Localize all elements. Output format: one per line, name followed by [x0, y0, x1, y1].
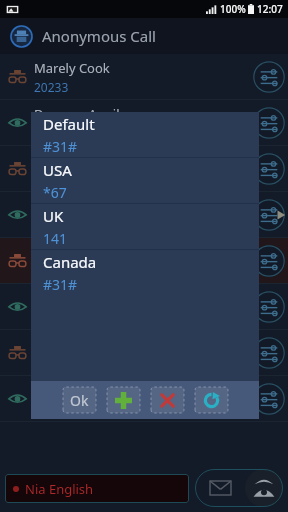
button[interactable]: Ok: [63, 387, 96, 413]
button[interactable]: Marely Cook: [0, 54, 288, 99]
button[interactable]: Liam Foster: [0, 376, 288, 421]
button[interactable]: Delete: [151, 387, 184, 413]
button[interactable]: Anonymous Call: [0, 18, 288, 54]
button[interactable]: Message: [195, 469, 245, 507]
staticText: Noah Blake: [34, 289, 104, 307]
staticText: 12:07: [257, 2, 283, 16]
other: Options: [253, 199, 285, 231]
other: Options: [253, 383, 285, 415]
staticText: Default: [43, 114, 95, 134]
staticText: 62390: [34, 401, 69, 417]
button[interactable]: Call: [245, 469, 283, 507]
other: Options: [253, 107, 285, 139]
button[interactable]: UK: [31, 204, 259, 249]
staticText: #31#: [43, 137, 78, 156]
staticText: #31#: [43, 275, 78, 294]
staticText: Anonymous Call: [42, 26, 156, 46]
staticText: 47811: [34, 125, 69, 141]
button[interactable]: Noah Blake: [0, 284, 288, 329]
staticText: Nia English: [25, 480, 94, 498]
other: Options: [253, 291, 285, 323]
button[interactable]: Damson Aguilar: [0, 100, 288, 145]
staticText: Ivy Patel: [34, 243, 86, 261]
other: Anonymous Call: [10, 25, 33, 48]
button[interactable]: Nia English: [5, 474, 189, 503]
button[interactable]: Leah Monroe: [0, 192, 288, 237]
other: Options: [253, 337, 285, 369]
other: Options: [253, 61, 285, 93]
staticText: 141: [43, 229, 68, 248]
staticText: *67: [43, 183, 67, 202]
staticText: 33415: [34, 217, 69, 233]
button[interactable]: Ivy Patel: [0, 238, 288, 283]
staticText: 20233: [34, 79, 69, 95]
staticText: Marely Cook: [34, 59, 110, 77]
button[interactable]: Add: [107, 387, 140, 413]
button[interactable]: Carter Reid: [0, 146, 288, 191]
button[interactable]: USA: [31, 158, 259, 203]
staticText: 56098: [34, 263, 69, 279]
button[interactable]: Canada: [31, 250, 259, 295]
staticText: Liam Foster: [34, 381, 106, 399]
staticText: Ok: [70, 391, 89, 410]
staticText: USA: [43, 160, 72, 180]
staticText: 100%: [220, 2, 246, 16]
other: Options: [253, 245, 285, 277]
staticText: 90122: [34, 171, 69, 187]
staticText: Leah Monroe: [34, 197, 115, 215]
button[interactable]: Default: [31, 112, 259, 157]
button[interactable]: Reset: [195, 387, 228, 413]
staticText: Canada: [43, 252, 97, 272]
other: Options: [253, 153, 285, 185]
button[interactable]: Zoe Harper: [0, 330, 288, 375]
staticText: UK: [43, 206, 64, 226]
staticText: Carter Reid: [34, 151, 103, 169]
staticText: Damson Aguilar: [34, 105, 133, 123]
